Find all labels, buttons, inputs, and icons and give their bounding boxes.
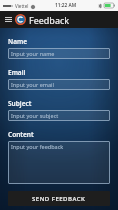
staticText: Name xyxy=(8,37,27,46)
staticText: Subject xyxy=(8,99,32,108)
button[interactable]: Input your subject xyxy=(8,110,110,121)
staticText: Input your email xyxy=(11,81,54,88)
button[interactable]: Open navigation menu xyxy=(3,14,14,25)
staticText: 11:22 AM xyxy=(55,2,77,9)
button[interactable]: Input your name xyxy=(8,48,110,59)
staticText: Viettel xyxy=(15,3,29,9)
button[interactable]: Input your email xyxy=(8,79,110,90)
staticText: Feedback xyxy=(29,14,70,26)
button[interactable]: SEND FEEDBACK xyxy=(8,191,110,206)
staticText: Input your subject xyxy=(11,112,59,119)
staticText: Input your name xyxy=(11,50,55,57)
button[interactable]: Input your feedback xyxy=(8,141,110,184)
staticText: Input your feedback xyxy=(11,143,64,150)
staticText: Content xyxy=(8,130,34,139)
staticText: SEND FEEDBACK xyxy=(32,195,86,203)
staticText: Email xyxy=(8,68,26,77)
